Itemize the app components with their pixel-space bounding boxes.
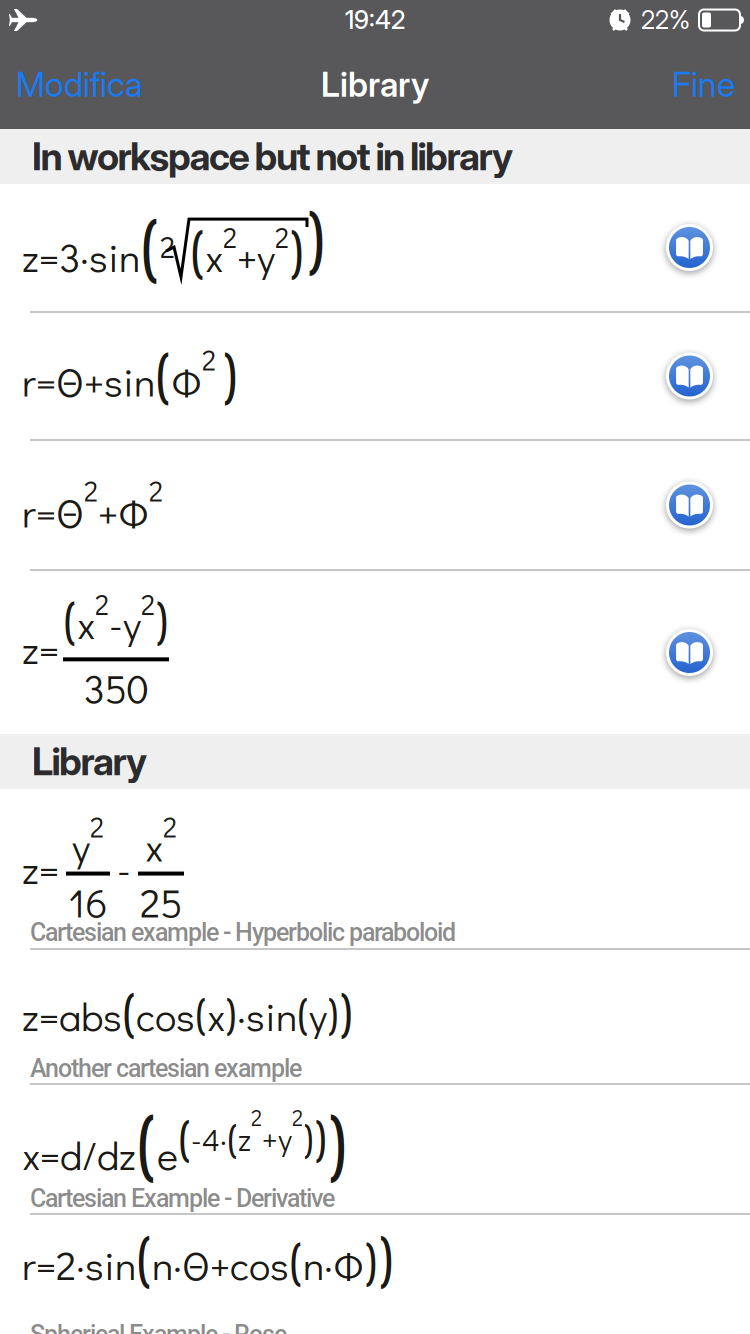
staticText: (x2+y2) — [190, 211, 304, 293]
button[interactable]: z= — [0, 571, 750, 734]
button[interactable] — [666, 629, 713, 676]
button[interactable]: z= — [0, 789, 750, 948]
button[interactable] — [666, 224, 713, 271]
button[interactable] — [666, 481, 713, 528]
button[interactable]: Modifica — [0, 64, 143, 105]
button[interactable]: r=Θ+sin(Φ2 ) — [0, 313, 750, 439]
staticText: r=2·sin(n·Θ+cos(n·Φ)) — [22, 1216, 394, 1303]
staticText: 25 — [140, 876, 182, 928]
staticText: Fine — [672, 64, 735, 105]
staticText: x2 — [145, 809, 177, 872]
staticText: Another cartesian example — [30, 1054, 302, 1083]
staticText: z= — [22, 842, 59, 895]
staticText: y2 — [72, 809, 104, 872]
button[interactable]: r=2·sin(n·Θ+cos(n·Φ)) — [0, 1215, 750, 1334]
button[interactable]: z=3·sin(2 — [0, 184, 750, 311]
staticText: Library — [32, 738, 147, 784]
staticText: - — [117, 842, 131, 895]
staticText: Cartesian Example - Derivative — [30, 1184, 335, 1213]
button[interactable]: x=d/dz(e(-4·(z2+y2))) — [0, 1085, 750, 1213]
button[interactable]: z=abs(cos(x)·sin(y)) — [0, 950, 750, 1083]
staticText: Cartesian example - Hyperbolic paraboloi… — [30, 918, 456, 947]
staticText: ) — [306, 184, 326, 294]
button[interactable]: Fine — [672, 64, 750, 105]
staticText: 19:42 — [345, 5, 405, 35]
staticText: x=d/dz(e(-4·(z2+y2))) — [22, 1088, 348, 1201]
staticText: Modifica — [16, 64, 143, 105]
staticText: z=abs(cos(x)·sin(y)) — [22, 974, 353, 1051]
staticText: z= — [22, 622, 59, 675]
staticText: r=Θ+sin(Φ2 ) — [22, 332, 238, 419]
staticText: (x2-y2) — [63, 583, 169, 657]
staticText: 16 — [68, 876, 107, 928]
staticText: Spherical Example - Rose — [30, 1320, 287, 1334]
staticText: In workspace but not in library — [32, 133, 513, 179]
staticText: Library — [321, 64, 429, 105]
staticText: 350 — [83, 661, 148, 714]
button[interactable]: r=Θ2+Φ2 — [0, 441, 750, 569]
staticText: 22% — [641, 5, 690, 35]
staticText: z=3·sin(2 — [22, 193, 175, 301]
button[interactable] — [666, 352, 713, 399]
staticText: r=Θ2+Φ2 — [22, 473, 163, 537]
